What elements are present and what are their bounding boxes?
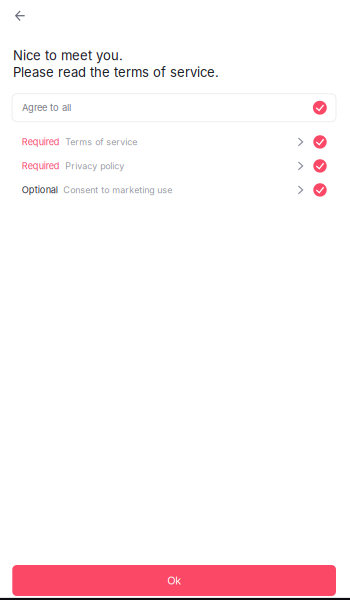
button[interactable]: Optional xyxy=(0,178,350,202)
staticText: Privacy policy xyxy=(65,160,124,171)
button[interactable]: Required xyxy=(0,154,350,178)
button[interactable]: Agree to all xyxy=(12,94,336,122)
staticText: Ok xyxy=(167,574,181,587)
staticText: Agree to all xyxy=(22,102,71,113)
staticText: Consent to marketing use xyxy=(63,184,172,195)
staticText: Required xyxy=(22,160,60,171)
staticText: Required xyxy=(22,136,60,147)
staticText: Please read the terms of service. xyxy=(13,64,219,80)
button[interactable]: Ok xyxy=(12,565,336,596)
button[interactable]: Required xyxy=(0,130,350,154)
staticText: Nice to meet you. xyxy=(13,47,123,63)
staticText: Optional xyxy=(22,184,58,195)
button[interactable]: Back xyxy=(0,0,37,31)
staticText: Terms of service xyxy=(65,136,137,147)
